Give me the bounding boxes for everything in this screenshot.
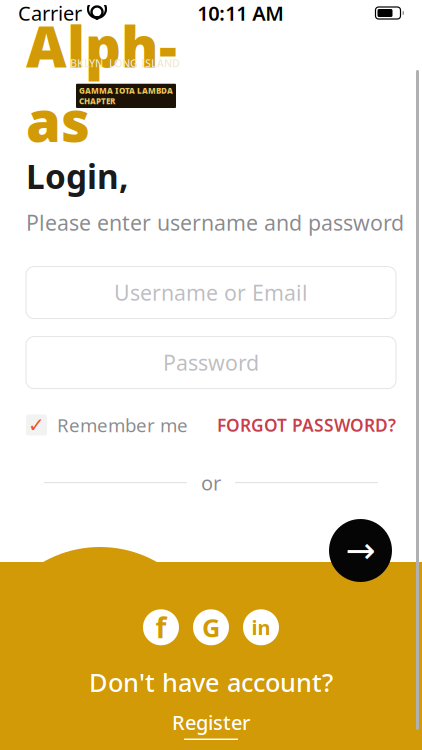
staticText: Login, xyxy=(26,154,129,198)
staticText: Password xyxy=(163,348,259,377)
staticText: FORGOT PASSWORD? xyxy=(217,413,396,436)
staticText: f xyxy=(155,609,166,646)
button[interactable]: Sign in xyxy=(329,519,392,582)
staticText: GAMMA IOTA LAMBDA CHAPTER xyxy=(79,85,173,106)
staticText: Carrier xyxy=(18,0,82,26)
staticText: → xyxy=(345,530,375,571)
staticText: Don't have account? xyxy=(89,665,333,699)
staticText: G xyxy=(202,610,220,644)
staticText: Username or Email xyxy=(114,278,308,307)
staticText: Alphas xyxy=(26,9,177,157)
staticText: ✓ xyxy=(28,414,45,436)
button[interactable]: FORGOT PASSWORD? xyxy=(217,413,396,436)
staticText: Register xyxy=(172,709,250,735)
staticText: Remember me xyxy=(57,413,188,437)
staticText: or xyxy=(201,469,221,496)
staticText: Please enter username and password xyxy=(26,208,404,237)
button[interactable]: Sign in with Facebook xyxy=(143,609,179,645)
staticText: BKLYN LONG ISLAND xyxy=(70,56,180,70)
button[interactable]: ✓ xyxy=(26,413,188,437)
staticText: in xyxy=(251,614,270,641)
button[interactable]: Sign in with LinkedIn xyxy=(243,609,279,645)
button[interactable]: Sign in with Google xyxy=(193,609,229,645)
button[interactable]: Register xyxy=(172,709,250,740)
staticText: 10:11 AM xyxy=(197,0,284,26)
